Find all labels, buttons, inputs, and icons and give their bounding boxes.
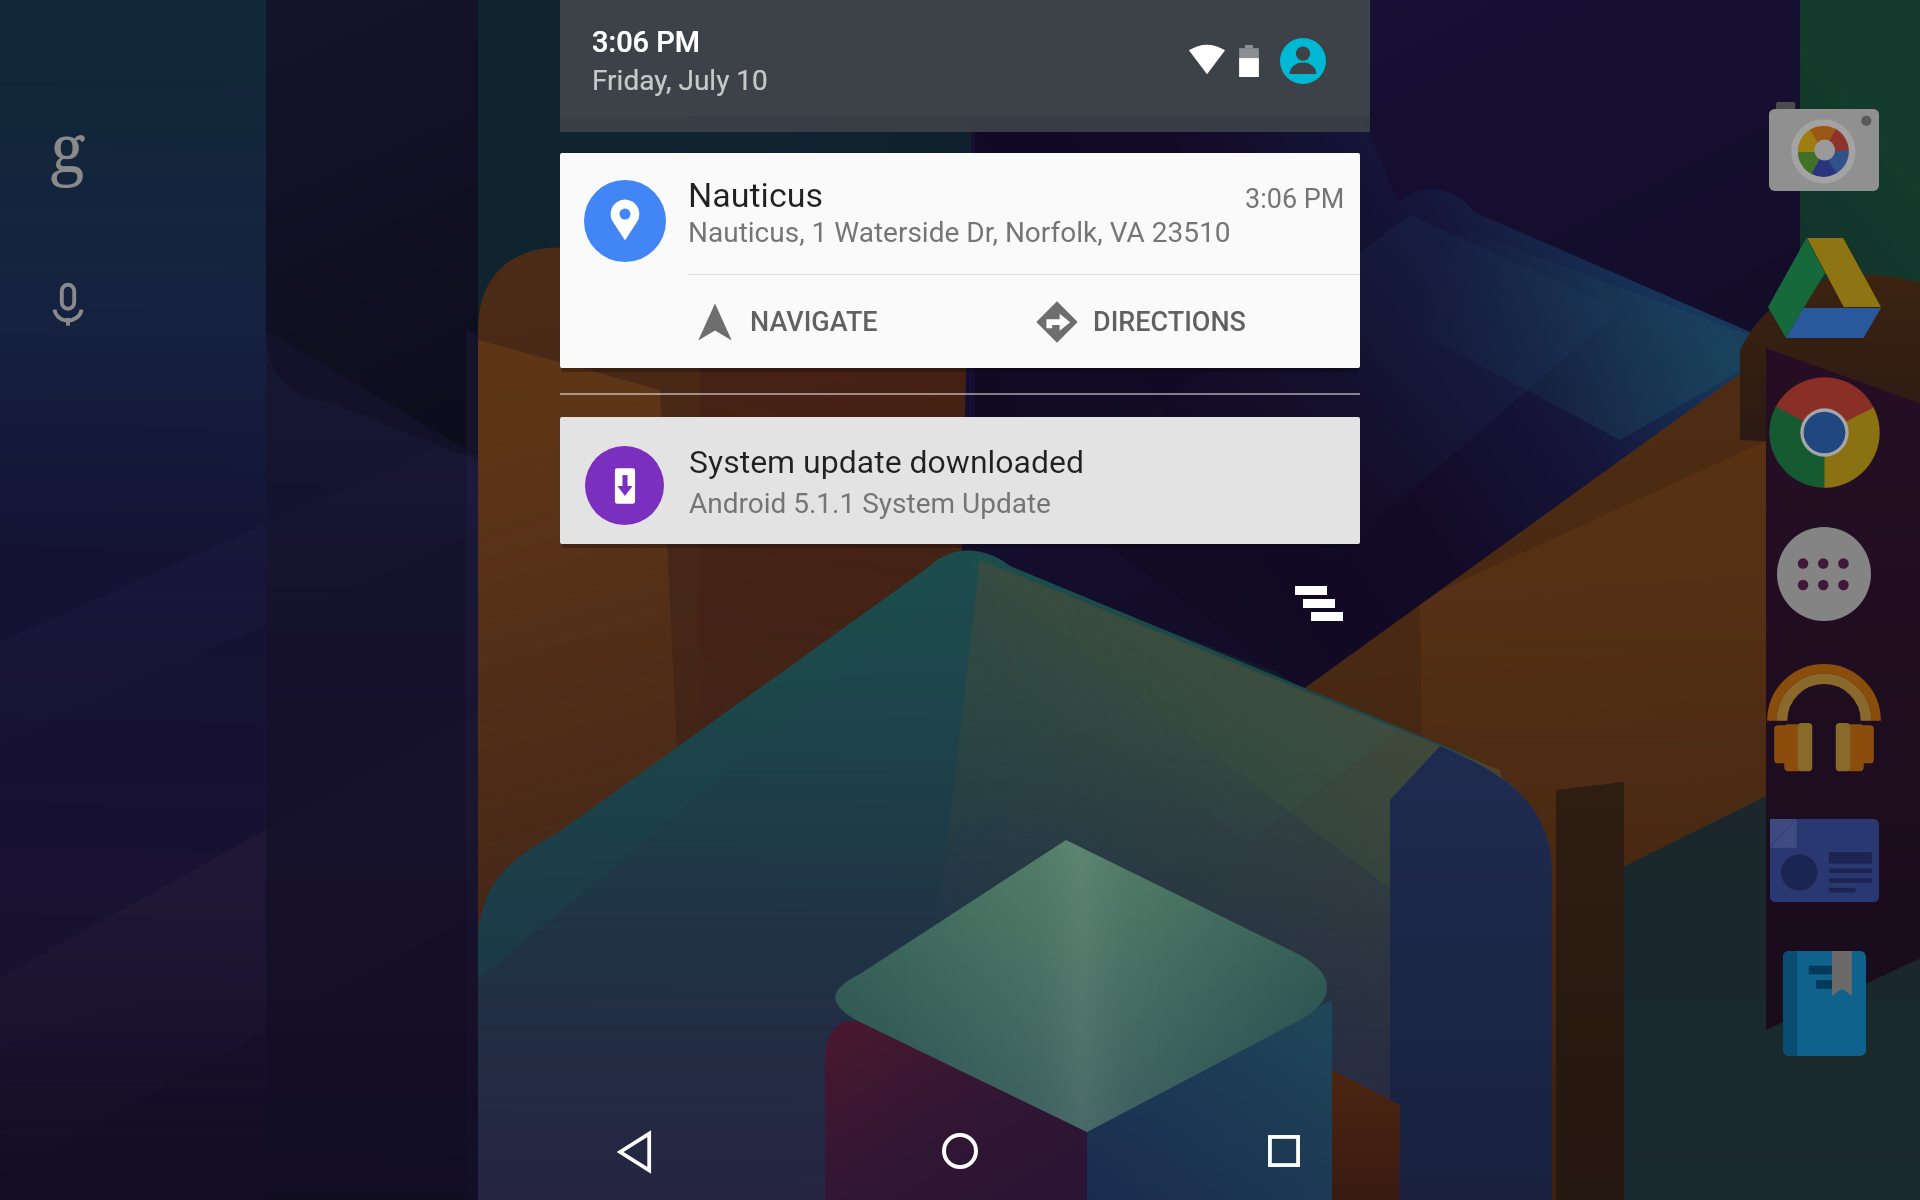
button[interactable]: Quick settings [1273,564,1365,642]
button[interactable]: Home [915,1106,1005,1196]
staticText: g [50,101,86,189]
staticText: Friday, July 10 [592,64,768,97]
staticText: System update downloaded [689,443,1085,481]
button[interactable]: Camera [1764,86,1884,206]
staticText: Android 5.1.1 System Update [689,487,1051,520]
button[interactable]: Back [591,1107,681,1197]
staticText: DIRECTIONS [1093,306,1246,338]
button[interactable]: Apps [1764,514,1884,634]
staticText: NAVIGATE [750,306,878,338]
button[interactable]: Voice search [38,275,98,335]
button[interactable]: Google Search [32,101,108,189]
button[interactable]: DIRECTIONS [960,275,1360,368]
button[interactable]: Drive [1764,228,1884,348]
staticText: 3:06 PM [592,25,701,59]
staticText: Nauticus [688,175,823,215]
button[interactable]: Play Books [1764,943,1884,1063]
button[interactable]: System update downloaded [560,417,1360,544]
staticText: Nauticus, 1 Waterside Dr, Norfolk, VA 23… [688,216,1231,249]
button[interactable]: Chrome [1764,372,1884,492]
staticText: 3:06 PM [1245,183,1345,215]
button[interactable]: Nauticus [560,153,1360,368]
button[interactable]: Recents [1239,1106,1329,1196]
button[interactable]: Play Newsstand [1764,800,1884,920]
button[interactable]: User profile [1280,38,1326,84]
button[interactable]: NAVIGATE [560,275,960,368]
button[interactable]: Play Music [1764,658,1884,778]
